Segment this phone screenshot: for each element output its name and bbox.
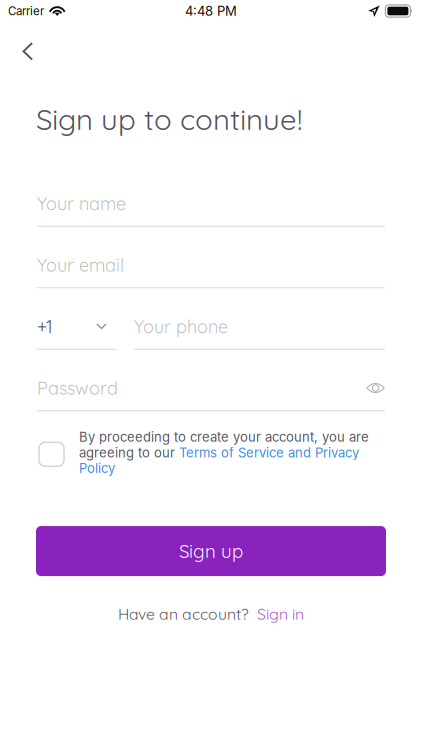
button[interactable]: Back: [0, 22, 49, 72]
button[interactable]: Sign up: [36, 526, 386, 576]
staticText: +1: [37, 315, 53, 338]
staticText: Have an account?: [118, 604, 249, 624]
button[interactable]: Sign in: [257, 604, 304, 624]
staticText: 4:48 PM: [185, 3, 237, 19]
staticText: By proceeding to create your account, yo…: [79, 429, 369, 445]
button[interactable]: Show password: [366, 380, 385, 395]
staticText: Terms of Service and Privacy: [179, 445, 359, 461]
staticText: Password: [37, 377, 118, 399]
staticText: Your email: [37, 254, 124, 276]
staticText: agreeing to our: [79, 445, 179, 461]
staticText: Sign in: [257, 604, 304, 624]
staticText: Sign up: [179, 539, 243, 563]
button[interactable]: Agree to terms and privacy policy: [39, 425, 64, 466]
staticText: Your name: [37, 192, 126, 215]
staticText: Sign up to continue!: [36, 101, 302, 137]
staticText: Policy: [79, 460, 115, 476]
staticText: Your phone: [134, 315, 228, 338]
staticText: Carrier: [8, 4, 44, 18]
